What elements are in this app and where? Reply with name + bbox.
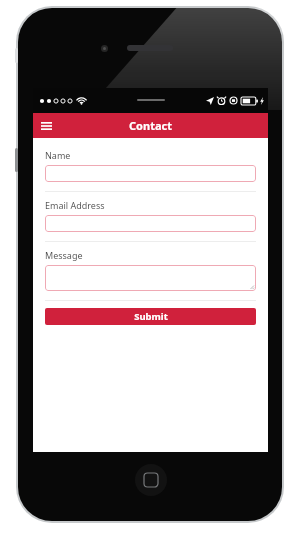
button[interactable]: Text input field [45, 215, 256, 232]
button[interactable]: Submit [45, 308, 256, 325]
staticText: Message [45, 249, 83, 261]
staticText: Email Address [45, 199, 105, 211]
button[interactable]: Text input field [45, 165, 256, 182]
staticText: Submit [134, 310, 168, 323]
staticText: Contact [129, 118, 172, 133]
staticText: Name [45, 149, 71, 161]
button[interactable]: Open navigation menu [33, 113, 59, 138]
button[interactable]: Text input field [45, 265, 256, 291]
